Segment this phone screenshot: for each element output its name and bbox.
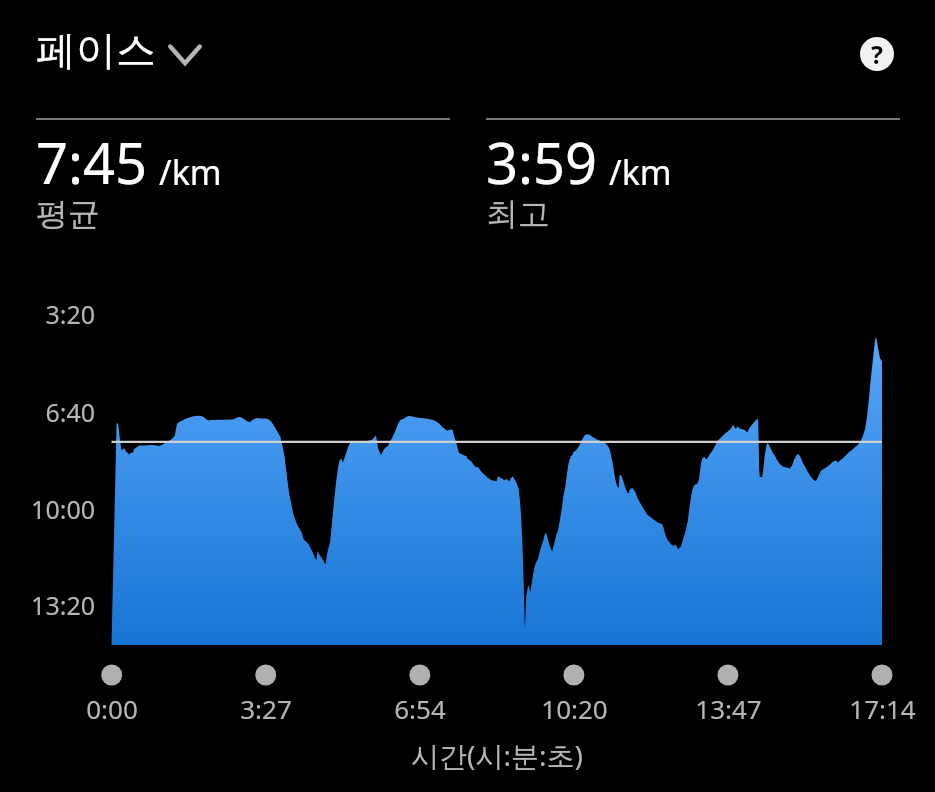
staticText: 17:14: [849, 691, 916, 726]
staticText: 시간(시:분:초): [411, 736, 583, 774]
staticText: 7:45: [36, 124, 148, 200]
staticText: 0:00: [86, 691, 138, 726]
staticText: ?: [871, 37, 883, 71]
staticText: 6:40: [45, 395, 95, 429]
staticText: 13:47: [695, 691, 762, 726]
staticText: 13:20: [31, 588, 95, 622]
staticText: 평균: [36, 194, 100, 234]
staticText: 10:20: [541, 691, 608, 726]
button[interactable]: 페이스 - change metric: [36, 25, 203, 75]
staticText: 3:20: [45, 297, 95, 331]
staticText: 10:00: [31, 492, 95, 526]
staticText: 3:27: [240, 691, 292, 726]
staticText: 3:59: [486, 124, 598, 200]
staticText: /km: [159, 149, 222, 195]
staticText: 6:54: [394, 691, 446, 726]
button[interactable]: 7:45: [36, 124, 450, 240]
staticText: 페이스: [36, 25, 156, 75]
button[interactable]: Help: [860, 37, 894, 71]
staticText: 최고: [486, 194, 550, 234]
button[interactable]: 3:59: [486, 124, 900, 240]
staticText: /km: [609, 149, 672, 195]
